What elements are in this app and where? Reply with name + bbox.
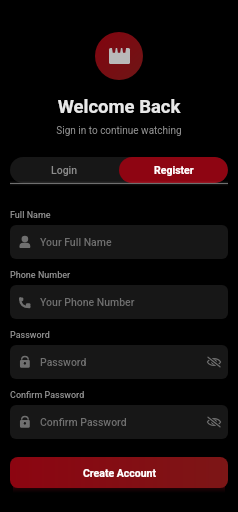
staticText: Confirm Password bbox=[40, 416, 127, 428]
button[interactable]: Show password bbox=[201, 349, 227, 375]
button[interactable]: Create Account bbox=[10, 457, 228, 488]
staticText: Your Phone Number bbox=[40, 296, 135, 308]
staticText: Create Account bbox=[83, 467, 156, 479]
button[interactable]: App logo bbox=[95, 32, 143, 80]
button[interactable]: Your Full Name bbox=[10, 225, 228, 259]
staticText: Password bbox=[40, 356, 87, 368]
staticText: Welcome Back bbox=[0, 96, 238, 118]
staticText: Sign in to continue watching bbox=[0, 125, 238, 137]
button[interactable]: Confirm Password bbox=[10, 405, 228, 439]
staticText: Full Name bbox=[10, 210, 51, 221]
button[interactable]: Register bbox=[119, 157, 228, 183]
staticText: Login bbox=[51, 164, 78, 176]
staticText: Register bbox=[154, 164, 194, 176]
button[interactable]: Password bbox=[10, 345, 228, 379]
staticText: Your Full Name bbox=[40, 236, 112, 248]
button[interactable]: Login bbox=[10, 157, 119, 183]
button[interactable]: Your Phone Number bbox=[10, 285, 228, 319]
staticText: Phone Number bbox=[10, 270, 71, 281]
button[interactable]: Show password bbox=[201, 409, 227, 435]
staticText: Password bbox=[10, 330, 50, 341]
staticText: Confirm Password bbox=[10, 390, 85, 401]
